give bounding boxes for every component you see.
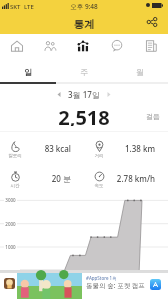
staticText: 83 kcal: [0, 143, 71, 154]
staticText: 걸음: [146, 112, 160, 121]
button[interactable]: Home: [0, 35, 33, 57]
staticText: #AppStore 1위: [86, 275, 117, 281]
button[interactable]: 일: [0, 62, 56, 81]
button[interactable]: 속도: [84, 167, 168, 197]
button[interactable]: Friends: [33, 35, 66, 57]
button[interactable]: Feed: [134, 35, 168, 57]
staticText: 2,518: [0, 104, 168, 126]
staticText: 통계: [0, 18, 168, 31]
staticText: LTE: [24, 3, 34, 11]
staticText: 1.38 km: [84, 143, 155, 154]
staticText: 20 분: [0, 173, 71, 184]
staticText: 칼로리: [5, 153, 25, 159]
staticText: 주: [80, 67, 88, 77]
staticText: 거리: [89, 153, 109, 159]
staticText: 시간: [5, 183, 25, 189]
button[interactable]: Statistics: [66, 35, 100, 57]
staticText: 월: [136, 67, 144, 77]
button[interactable]: Chat: [100, 35, 134, 57]
staticText: 동물의 숲: 포켓 캠프: [86, 281, 145, 290]
staticText: 속도: [89, 183, 109, 189]
button[interactable]: 주: [56, 62, 112, 81]
staticText: SKT: [10, 3, 21, 11]
button[interactable]: 거리: [84, 137, 168, 167]
staticText: 3000: [5, 197, 16, 203]
button[interactable]: 시간: [0, 167, 84, 197]
button[interactable]: 월: [112, 62, 168, 81]
staticText: 2.78 km/h: [84, 173, 155, 184]
staticText: 3월 17일: [68, 89, 100, 100]
button[interactable]: #AppStore 1위: [0, 271, 168, 299]
button[interactable]: Share: [143, 13, 161, 31]
button[interactable]: Previous day: [53, 88, 66, 101]
button[interactable]: Open App Store: [150, 279, 161, 290]
staticText: 1000: [5, 244, 16, 250]
staticText: 오후 9:48: [0, 2, 168, 11]
staticText: 일: [24, 67, 32, 77]
button[interactable]: 칼로리: [0, 137, 84, 167]
button[interactable]: Next day: [102, 88, 115, 101]
staticText: 2000: [5, 221, 16, 227]
